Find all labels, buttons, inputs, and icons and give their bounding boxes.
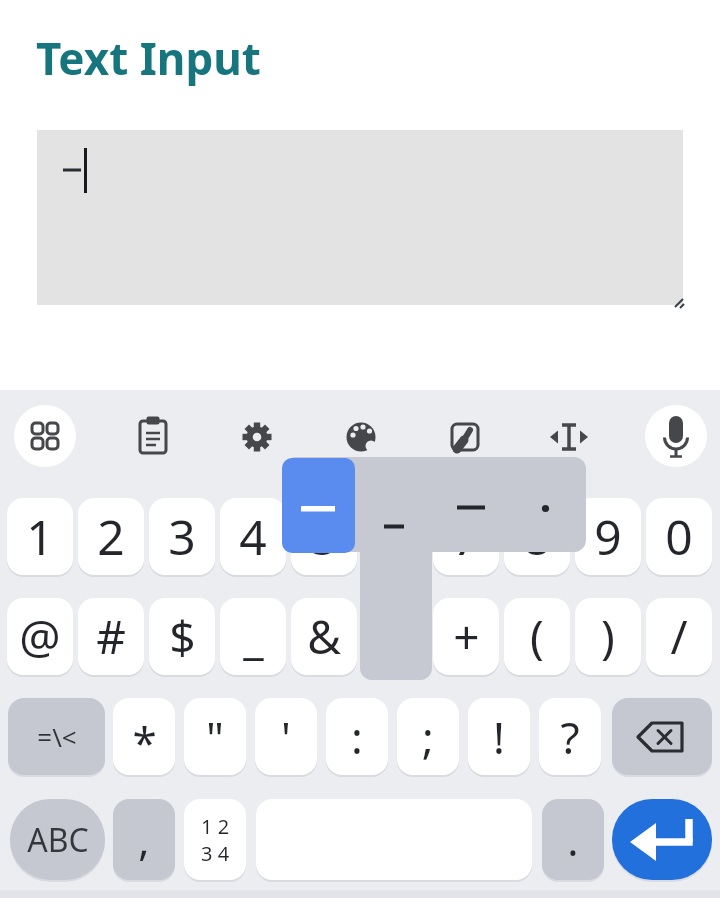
staticText: ? (560, 707, 580, 767)
button[interactable]: 2 (78, 498, 144, 575)
button[interactable]: " (184, 698, 246, 775)
staticText: $ (169, 605, 196, 668)
button[interactable]: . (542, 799, 604, 880)
button[interactable] (37, 130, 683, 305)
staticText: . (567, 811, 579, 868)
staticText: 3 4 (201, 840, 230, 867)
staticText: @ (19, 605, 61, 668)
staticText: 3 (168, 504, 196, 569)
staticText: =\< (37, 719, 77, 754)
button[interactable]: ' (255, 698, 317, 775)
staticText: Text Input (36, 28, 261, 88)
staticText: 2 (97, 504, 125, 569)
staticText: 5 (310, 504, 338, 569)
staticText: 4 (239, 504, 267, 569)
button[interactable]: 1 2 (184, 799, 246, 880)
button[interactable]: ? (539, 698, 601, 775)
button[interactable] (612, 799, 712, 880)
button[interactable]: 0 (646, 498, 712, 575)
button[interactable] (237, 417, 277, 457)
button[interactable]: 1 (7, 498, 73, 575)
button[interactable]: & (291, 598, 357, 675)
button[interactable]: 7 (433, 498, 499, 575)
button[interactable]: * (113, 698, 175, 775)
button[interactable]: 5 (291, 498, 357, 575)
staticText: 8 (523, 504, 551, 569)
button[interactable]: 8 (504, 498, 570, 575)
button[interactable] (341, 417, 381, 457)
staticText: / (670, 605, 688, 668)
button[interactable]: ; (397, 698, 459, 775)
button[interactable]: : (326, 698, 388, 775)
staticText: * (132, 712, 157, 772)
button[interactable]: 4 (220, 498, 286, 575)
staticText: # (96, 605, 126, 668)
staticText: 7 (452, 504, 480, 569)
button[interactable] (612, 698, 712, 775)
staticText: ! (493, 707, 505, 767)
button[interactable] (549, 417, 589, 457)
button[interactable] (445, 417, 485, 457)
staticText: : (351, 707, 363, 767)
staticText: 0 (665, 504, 693, 569)
button[interactable]: 3 (149, 498, 215, 575)
button[interactable]: ( (504, 598, 570, 675)
button[interactable] (645, 405, 707, 467)
button[interactable]: =\< (8, 698, 105, 775)
button[interactable]: $ (149, 598, 215, 675)
button[interactable]: ! (468, 698, 530, 775)
staticText: ; (422, 707, 434, 767)
staticText: ' (281, 707, 291, 767)
button[interactable]: 6 (362, 498, 428, 575)
button[interactable]: , (113, 799, 175, 880)
staticText: _ (243, 605, 264, 668)
staticText: + (453, 605, 480, 668)
button[interactable]: # (78, 598, 144, 675)
staticText: " (206, 707, 224, 767)
staticText: ABC (27, 818, 89, 862)
button[interactable]: + (433, 598, 499, 675)
staticText: ) (601, 605, 615, 668)
staticText: 1 (26, 504, 54, 569)
button[interactable]: _ (220, 598, 286, 675)
button[interactable]: / (646, 598, 712, 675)
staticText: & (307, 605, 341, 668)
staticText: ( (530, 605, 544, 668)
staticText: 9 (594, 504, 622, 569)
button[interactable]: ABC (10, 799, 105, 880)
button[interactable]: ) (575, 598, 641, 675)
button[interactable]: @ (7, 598, 73, 675)
staticText: , (138, 811, 150, 868)
button[interactable] (14, 405, 76, 467)
button[interactable]: 9 (575, 498, 641, 575)
button[interactable] (133, 417, 173, 457)
staticText: 6 (381, 504, 409, 569)
staticText: 1 2 (201, 813, 230, 840)
